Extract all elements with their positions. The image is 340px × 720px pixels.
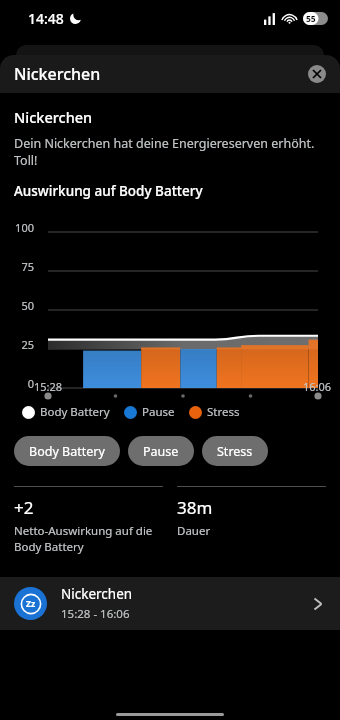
staticText: Nickerchen	[14, 63, 101, 85]
staticText: 38m	[177, 496, 213, 519]
staticText: Pause	[142, 404, 175, 420]
button[interactable]: Pause	[128, 436, 194, 466]
button[interactable]: Body Battery	[14, 436, 120, 466]
staticText: Dauer	[177, 523, 211, 539]
staticText: Pause	[143, 443, 179, 460]
staticText: 15:28 - 16:06	[61, 606, 130, 622]
staticText: Stress	[217, 443, 253, 460]
staticText: Zz	[26, 598, 36, 610]
button[interactable]: Zz	[0, 577, 340, 630]
staticText: Body Battery	[29, 443, 105, 460]
staticText: Auswirkung auf Body Battery	[14, 182, 203, 200]
staticText: 75	[0, 259, 34, 274]
staticText: 14:48	[28, 9, 64, 28]
staticText: Body Battery	[40, 404, 110, 420]
staticText: 0	[0, 376, 34, 391]
staticText: 55	[306, 13, 316, 25]
staticText: Stress	[207, 404, 240, 420]
staticText: Netto-Auswirkung auf die Body Battery	[14, 523, 153, 555]
button[interactable]: Schließen	[308, 65, 326, 83]
staticText: 100	[0, 220, 34, 235]
staticText: 25	[0, 337, 34, 352]
staticText: 15:28	[34, 379, 63, 394]
button[interactable]: Stress	[202, 436, 268, 466]
staticText: +2	[14, 496, 34, 519]
staticText: Dein Nickerchen hat deine Energiereserve…	[14, 135, 340, 169]
staticText: 16:06	[303, 379, 332, 394]
staticText: Nickerchen	[61, 585, 133, 603]
staticText: 50	[0, 298, 34, 313]
staticText: Nickerchen	[14, 107, 93, 127]
